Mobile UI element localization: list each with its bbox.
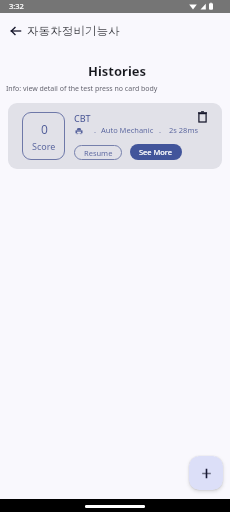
- staticText: Auto Mechanic: [101, 125, 154, 135]
- button[interactable]: 0: [8, 103, 222, 169]
- button[interactable]: Back: [4, 19, 28, 43]
- staticText: 자동차정비기능사: [27, 24, 120, 39]
- staticText: See More: [139, 147, 173, 157]
- staticText: .: [94, 125, 97, 135]
- button[interactable]: See More: [130, 144, 182, 160]
- button[interactable]: Resume: [74, 145, 122, 160]
- staticText: 3:32: [9, 1, 24, 11]
- staticText: 2s 28ms: [169, 125, 199, 135]
- staticText: CBT: [74, 112, 91, 124]
- staticText: .: [159, 125, 162, 135]
- button[interactable]: Add: [189, 456, 223, 490]
- staticText: Resume: [84, 148, 113, 158]
- staticText: Info: view detail of the test press no c…: [6, 84, 158, 94]
- staticText: 0: [41, 121, 48, 137]
- button[interactable]: Delete: [193, 106, 211, 124]
- staticText: Score: [32, 140, 56, 152]
- staticText: Histories: [2, 62, 230, 80]
